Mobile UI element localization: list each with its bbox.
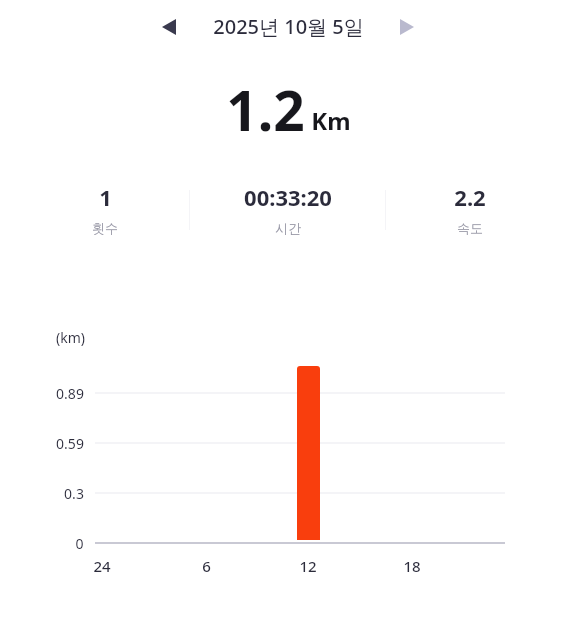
button[interactable]: 1 [20,182,190,244]
staticText: 6 [202,556,211,576]
button[interactable]: Previous day [152,10,186,44]
staticText: 0.89 [56,384,84,403]
staticText: 2025년 10월 5일 [213,13,364,40]
staticText: 18 [403,556,421,576]
staticText: 12 [299,556,317,576]
staticText: 1.2 [226,72,305,144]
button[interactable]: 2.2 [385,182,555,244]
button[interactable]: Next day [390,10,424,44]
staticText: 0.59 [56,434,84,453]
staticText: 2.2 [454,182,486,212]
staticText: 횟수 [92,220,118,236]
staticText: 0 [75,534,84,553]
staticText: 24 [93,556,111,576]
staticText: 1 [99,182,112,212]
staticText: 시간 [275,220,301,236]
button[interactable]: 2025년 10월 5일 [190,8,386,44]
staticText: (km) [56,328,85,347]
staticText: Km [311,104,351,137]
staticText: 00:33:20 [244,182,332,212]
staticText: 속도 [457,220,483,236]
staticText: 0.3 [64,484,84,503]
button[interactable]: 00:33:20 [203,182,373,244]
